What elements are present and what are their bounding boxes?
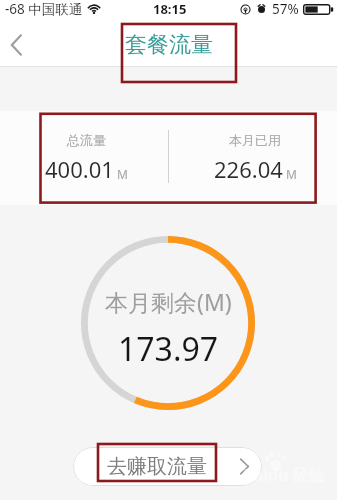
- staticText: -68 中国联通: [5, 0, 83, 18]
- staticText: Baidu 经验: [243, 464, 325, 486]
- staticText: 总流量: [67, 132, 106, 148]
- staticText: 去赚取流量: [107, 454, 239, 479]
- staticText: 173.97: [118, 327, 219, 371]
- button[interactable]: Back: [0, 25, 40, 65]
- staticText: 57%: [272, 0, 299, 18]
- staticText: M: [286, 166, 297, 182]
- staticText: 本月剩余(M): [105, 286, 232, 317]
- staticText: 400.01: [45, 154, 114, 184]
- staticText: M: [117, 166, 128, 182]
- staticText: 套餐流量: [125, 31, 213, 59]
- staticText: 本月已用: [229, 132, 281, 148]
- staticText: 226.04: [214, 154, 283, 184]
- staticText: 18:15: [153, 0, 187, 18]
- button[interactable]: 去赚取流量: [73, 447, 262, 486]
